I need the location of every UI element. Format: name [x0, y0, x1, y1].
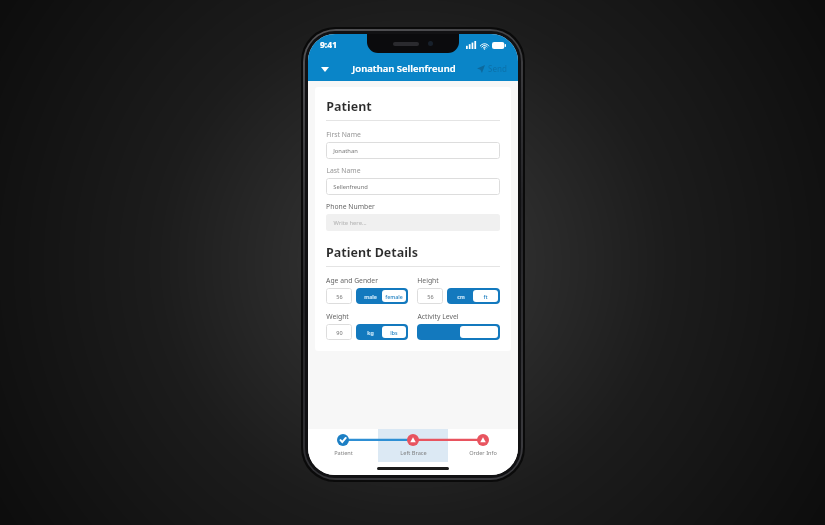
button[interactable]: cm — [447, 288, 500, 304]
staticText: Patient — [326, 98, 372, 115]
button[interactable]: kg — [356, 324, 408, 340]
staticText: Phone Number — [326, 202, 375, 211]
button[interactable]: Jonathan — [326, 142, 500, 159]
staticText: 56 — [336, 293, 343, 300]
staticText: Patient Details — [326, 244, 418, 261]
staticText: kg — [367, 329, 374, 336]
button[interactable]: 90 — [326, 324, 352, 340]
staticText: male — [364, 293, 377, 300]
button[interactable]: Order Info — [448, 429, 518, 462]
button[interactable]: Back — [317, 61, 333, 77]
staticText: cm — [457, 293, 465, 300]
button[interactable]: Activity Level — [417, 324, 500, 340]
staticText: Weight — [326, 312, 349, 321]
staticText: 56 — [427, 293, 434, 300]
staticText: female — [385, 293, 403, 300]
staticText: First Name — [326, 130, 361, 139]
staticText: Sellenfreund — [333, 183, 368, 191]
button[interactable]: Left Brace — [378, 429, 448, 462]
staticText: Write here... — [333, 219, 367, 227]
button[interactable]: Sellenfreund — [326, 178, 500, 195]
button[interactable]: Patient — [308, 429, 378, 462]
button[interactable]: male — [356, 288, 408, 304]
staticText: Jonathan — [333, 147, 358, 155]
staticText: Send — [488, 63, 507, 74]
staticText: Patient — [334, 449, 353, 457]
staticText: 9:41 — [320, 39, 337, 51]
staticText: lbs — [390, 329, 398, 336]
staticText: Jonathan Sellenfreund — [352, 62, 456, 75]
button[interactable]: 56 — [326, 288, 352, 304]
staticText: Age and Gender — [326, 276, 378, 285]
staticText: Activity Level — [417, 312, 459, 321]
button[interactable]: Write here... — [326, 214, 500, 231]
staticText: Order Info — [469, 449, 497, 457]
staticText: Height — [417, 276, 439, 285]
button[interactable]: Send — [475, 63, 509, 74]
staticText: Last Name — [326, 166, 361, 175]
staticText: ft — [483, 293, 488, 300]
staticText: Left Brace — [400, 449, 427, 457]
button[interactable]: 56 — [417, 288, 443, 304]
staticText: 90 — [336, 329, 343, 336]
